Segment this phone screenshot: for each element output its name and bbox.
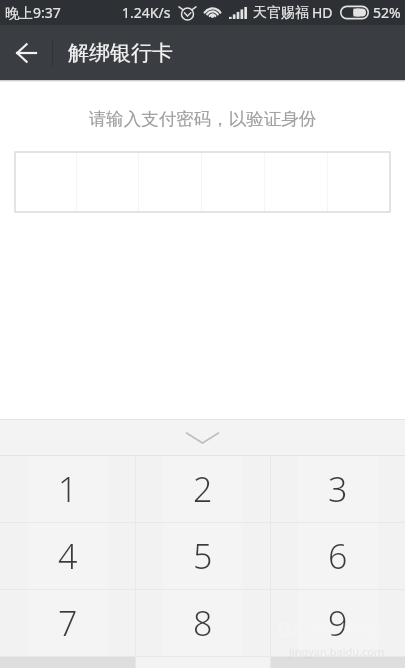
staticText: 6 [328, 533, 348, 579]
staticText: 9 [328, 600, 348, 646]
staticText: 请输入支付密码，以验证身份 [0, 108, 405, 130]
staticText: 52% [373, 3, 401, 22]
button[interactable]: 6 [271, 523, 405, 589]
staticText: Baidu 经验 [277, 615, 385, 644]
button[interactable]: 1 [0, 456, 135, 522]
button[interactable]: Back [0, 25, 52, 80]
staticText: HD [312, 3, 333, 22]
button[interactable]: 9 [271, 590, 405, 656]
button[interactable]: 4 [0, 523, 135, 589]
button[interactable]: 8 [136, 590, 270, 656]
button[interactable]: 3 [271, 456, 405, 522]
staticText: 3 [328, 466, 348, 512]
staticText: 2 [193, 466, 213, 512]
staticText: 1 [58, 466, 78, 512]
staticText: 8 [193, 600, 213, 646]
button[interactable]: 7 [0, 590, 135, 656]
staticText: 1.24K/s [122, 3, 171, 22]
button[interactable]: Hide keyboard [0, 420, 405, 455]
button[interactable]: 5 [136, 523, 270, 589]
staticText: 7 [58, 600, 78, 646]
staticText: 天官赐福 [253, 4, 309, 22]
staticText: 晚上9:37 [5, 3, 61, 22]
staticText: 解绑银行卡 [68, 40, 173, 66]
staticText: jingyan.baidu.com [289, 644, 385, 659]
staticText: 5 [193, 533, 213, 579]
button[interactable]: 2 [136, 456, 270, 522]
staticText: 4 [58, 533, 78, 579]
